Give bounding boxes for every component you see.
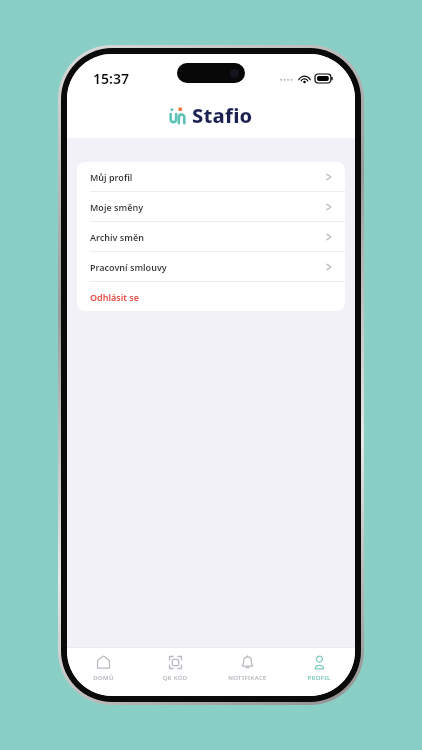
staticText: QR KÓD bbox=[162, 674, 188, 682]
staticText: PROFIL bbox=[307, 674, 331, 682]
button[interactable]: Pracovní smlouvy bbox=[77, 252, 345, 281]
staticText: DOMŮ bbox=[93, 674, 114, 682]
staticText: Stafio bbox=[192, 102, 253, 129]
staticText: Pracovní smlouvy bbox=[90, 261, 326, 273]
staticText: 15:37 bbox=[93, 69, 129, 88]
button[interactable]: DOMŮ bbox=[67, 648, 139, 696]
staticText: NOTIFIKACE bbox=[228, 674, 267, 682]
staticText: Moje směny bbox=[90, 201, 326, 213]
staticText: Můj profil bbox=[90, 171, 326, 183]
button[interactable]: Můj profil bbox=[77, 162, 345, 191]
button[interactable]: QR KÓD bbox=[139, 648, 211, 696]
button[interactable]: PROFIL bbox=[283, 648, 355, 696]
button[interactable]: Moje směny bbox=[77, 192, 345, 221]
button[interactable]: Archiv směn bbox=[77, 222, 345, 251]
staticText: Archiv směn bbox=[90, 231, 326, 243]
button[interactable]: NOTIFIKACE bbox=[211, 648, 283, 696]
staticText: Odhlásit se bbox=[90, 291, 332, 303]
button[interactable]: Odhlásit se bbox=[77, 282, 345, 311]
